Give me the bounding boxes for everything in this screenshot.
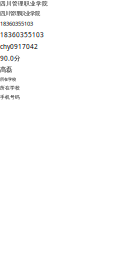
staticText: 手机号码 (0, 94, 20, 100)
staticText: 90.0分 (0, 54, 20, 62)
staticText: 四川管理职业学院 (0, 10, 40, 17)
staticText: 高磊 (0, 65, 12, 74)
staticText: 18360355103 (0, 30, 44, 39)
staticText: 所在学校 (0, 85, 20, 91)
staticText: 四川管理职业学院 (0, 0, 48, 7)
staticText: chy0917042 (0, 42, 38, 51)
staticText: 18360355103 (0, 20, 33, 27)
staticText: 所在学校 (0, 77, 16, 82)
